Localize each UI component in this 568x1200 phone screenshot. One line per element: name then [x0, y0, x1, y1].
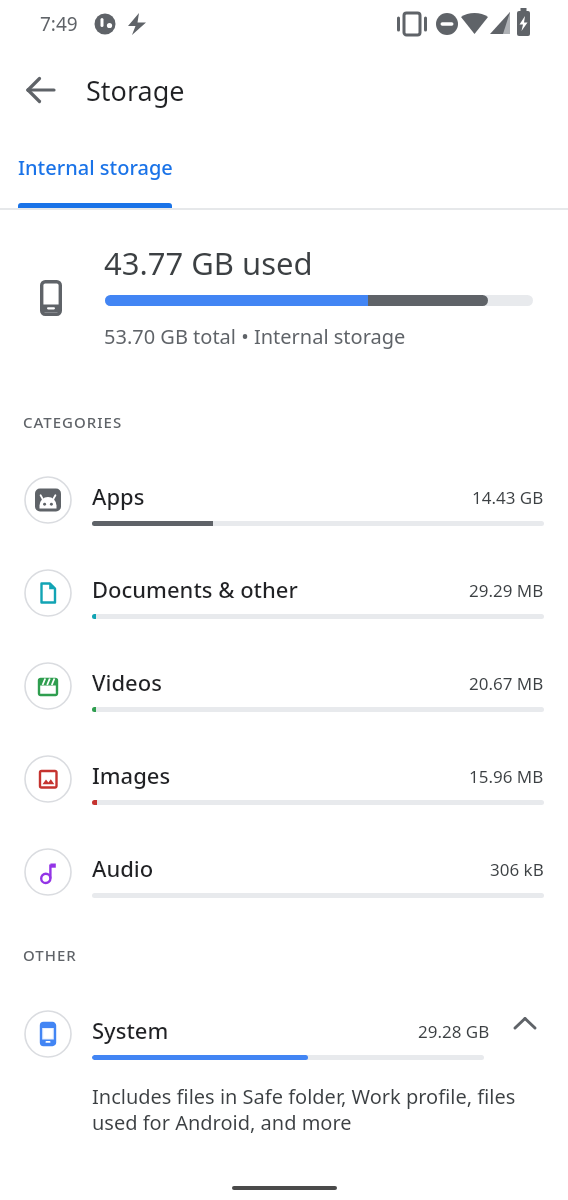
staticText: Videos — [92, 667, 162, 697]
staticText: Includes files in Safe folder, Work prof… — [92, 1083, 516, 1136]
staticText: 43.77 GB used — [104, 242, 313, 284]
staticText: OTHER — [23, 945, 77, 965]
button[interactable]: System — [0, 988, 568, 1081]
staticText: 7:49 — [40, 11, 78, 37]
staticText: 15.96 MB — [469, 765, 544, 788]
staticText: Storage — [86, 72, 185, 109]
button[interactable]: Audio — [0, 826, 568, 919]
staticText: Internal storage — [18, 154, 173, 181]
staticText: 53.70 GB total • Internal storage — [104, 323, 406, 350]
staticText: 29.29 MB — [469, 579, 544, 602]
staticText: Apps — [92, 481, 145, 511]
button[interactable]: Images — [0, 733, 568, 826]
button[interactable]: Documents & other — [0, 547, 568, 640]
button[interactable]: Videos — [0, 640, 568, 733]
button[interactable]: Internal storage — [0, 124, 190, 208]
button[interactable]: Apps — [0, 454, 568, 547]
staticText: CATEGORIES — [23, 412, 123, 432]
button[interactable] — [512, 1016, 538, 1032]
staticText: 306 kB — [490, 858, 544, 881]
button[interactable] — [232, 1186, 337, 1190]
staticText: Audio — [92, 853, 154, 883]
staticText: Documents & other — [92, 574, 298, 604]
staticText: 20.67 MB — [469, 672, 544, 695]
staticText: System — [92, 1015, 169, 1045]
button[interactable] — [22, 71, 60, 109]
staticText: 29.28 GB — [418, 1020, 490, 1043]
staticText: 14.43 GB — [472, 486, 544, 509]
staticText: Images — [92, 760, 171, 790]
